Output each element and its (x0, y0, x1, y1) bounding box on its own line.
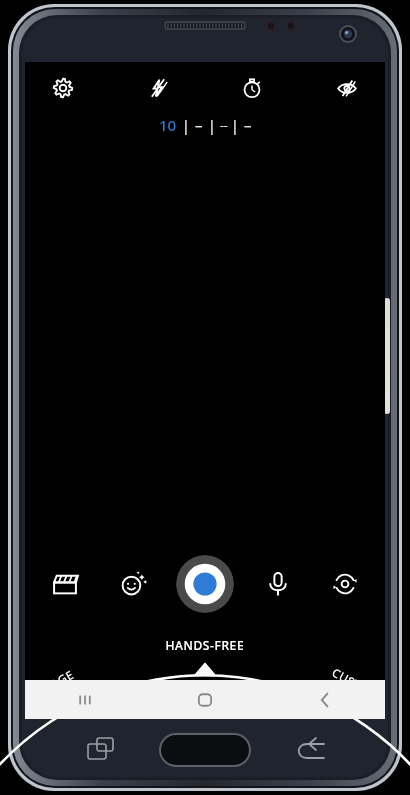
button[interactable]: Home (145, 680, 265, 719)
button[interactable]: Shutter (176, 555, 234, 613)
staticText: – (244, 115, 252, 135)
staticText: | (182, 116, 190, 135)
staticText: | (231, 116, 239, 135)
button[interactable]: AR filters (109, 560, 157, 608)
button[interactable]: Video mode (41, 560, 89, 608)
button[interactable]: Voice control (254, 560, 302, 608)
button[interactable]: Beauty off (327, 68, 367, 108)
staticText: -- (220, 117, 228, 133)
button[interactable]: Flash off (138, 68, 178, 108)
staticText: 10 (159, 115, 177, 135)
button[interactable]: Switch camera (321, 560, 369, 608)
staticText: – (195, 115, 203, 135)
button[interactable]: Settings (43, 68, 83, 108)
staticText: | (208, 116, 216, 135)
button[interactable]: Timer (232, 68, 272, 108)
button[interactable]: Back (265, 680, 385, 719)
button[interactable]: Recents (25, 680, 145, 719)
